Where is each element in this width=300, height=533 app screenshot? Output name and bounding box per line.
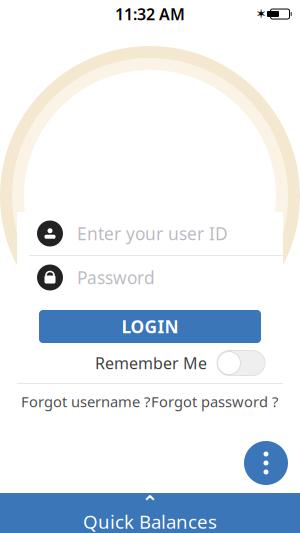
staticText: 11:32 AM [115, 3, 185, 25]
staticText: ✶ [255, 6, 266, 21]
button[interactable]: ⌃ [0, 493, 300, 533]
staticText: LOGIN [121, 315, 178, 338]
staticText: Enter your user ID [77, 222, 228, 245]
button[interactable]: Remember Me [17, 343, 283, 383]
button[interactable]: More options [244, 441, 288, 485]
staticText: Remember Me [95, 352, 207, 374]
button[interactable]: Password [17, 256, 283, 299]
button[interactable]: Enter your user ID [17, 212, 283, 255]
button[interactable]: LOGIN [39, 310, 261, 343]
staticText: Forgot password ? [151, 392, 278, 411]
staticText: Forgot username ? [21, 392, 150, 411]
staticText: ⌃ [141, 492, 158, 514]
button[interactable]: Forgot username ? [21, 384, 150, 419]
staticText: Quick Balances [83, 509, 217, 533]
button[interactable]: Forgot password ? [150, 384, 279, 419]
staticText: Password [77, 266, 155, 289]
